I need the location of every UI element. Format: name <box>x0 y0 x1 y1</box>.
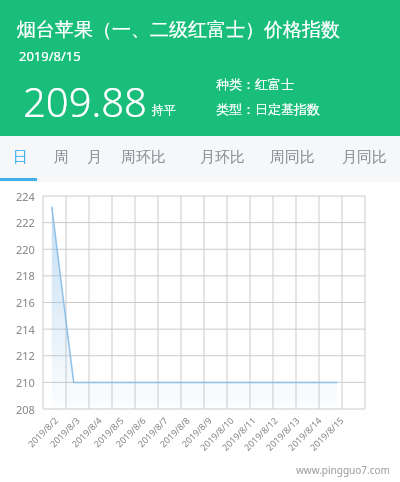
staticText: 类型：日定基指数 <box>216 101 320 117</box>
staticText: www.pingguo7.com <box>296 463 390 477</box>
staticText: 月同比 <box>342 148 387 167</box>
button[interactable]: 月同比 <box>336 136 392 179</box>
button[interactable]: 月 <box>81 136 107 179</box>
staticText: 日 <box>13 148 28 167</box>
staticText: 周环比 <box>121 148 166 167</box>
staticText: 209.88 <box>23 74 147 128</box>
staticText: 月 <box>87 148 102 167</box>
button[interactable]: 月环比 <box>194 136 250 179</box>
staticText: 周同比 <box>270 148 315 167</box>
staticText: 周 <box>54 148 69 167</box>
button[interactable]: 周 <box>48 136 74 179</box>
staticText: 月环比 <box>200 148 245 167</box>
staticText: 2019/8/15 <box>19 47 81 65</box>
staticText: 烟台苹果（一、二级红富士）价格指数 <box>17 18 340 42</box>
button[interactable]: 日 <box>7 136 33 179</box>
staticText: 持平 <box>152 102 176 117</box>
button[interactable]: 周同比 <box>264 136 320 179</box>
staticText: 种类：红富士 <box>216 76 294 92</box>
button[interactable]: 周环比 <box>115 136 171 179</box>
